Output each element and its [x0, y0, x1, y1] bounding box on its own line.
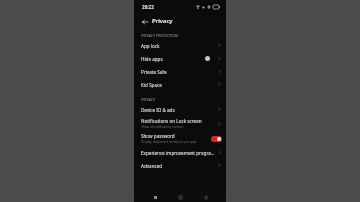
staticText: Show all notification content [141, 125, 184, 129]
staticText: Notifications on Lock screen [141, 118, 202, 124]
button[interactable]: Home [175, 192, 185, 202]
button[interactable]: Show password [134, 131, 226, 146]
staticText: App lock [141, 43, 160, 49]
button[interactable]: Device ID & ads [134, 103, 226, 116]
staticText: Kid Space [141, 82, 162, 88]
button[interactable]: Recents [150, 192, 160, 202]
staticText: PRIVACY PROTECTION [141, 33, 178, 38]
button[interactable]: Show password toggle [211, 136, 222, 142]
staticText: Device ID & ads [141, 107, 175, 113]
staticText: Privacy [152, 17, 173, 25]
button[interactable]: Kid Space [134, 78, 226, 91]
staticText: Show password [141, 133, 175, 139]
staticText: Hide apps [141, 56, 163, 62]
staticText: Experience improvement programs [141, 150, 217, 156]
button[interactable]: Back [139, 16, 150, 27]
button[interactable]: Notifications on Lock screen [134, 116, 226, 131]
button[interactable]: Back [201, 192, 211, 202]
button[interactable]: Private Safe [134, 65, 226, 78]
staticText: Private Safe [141, 69, 167, 75]
button[interactable]: Experience improvement programs [134, 146, 226, 159]
button[interactable]: Hide apps [134, 52, 226, 65]
button[interactable]: App lock [134, 39, 226, 52]
staticText: 20:22 [142, 4, 154, 10]
staticText: PRIVACY [141, 97, 156, 102]
button[interactable]: Advanced [134, 159, 226, 172]
staticText: Advanced [141, 163, 163, 169]
staticText: Display characters briefly as you type [141, 140, 197, 144]
